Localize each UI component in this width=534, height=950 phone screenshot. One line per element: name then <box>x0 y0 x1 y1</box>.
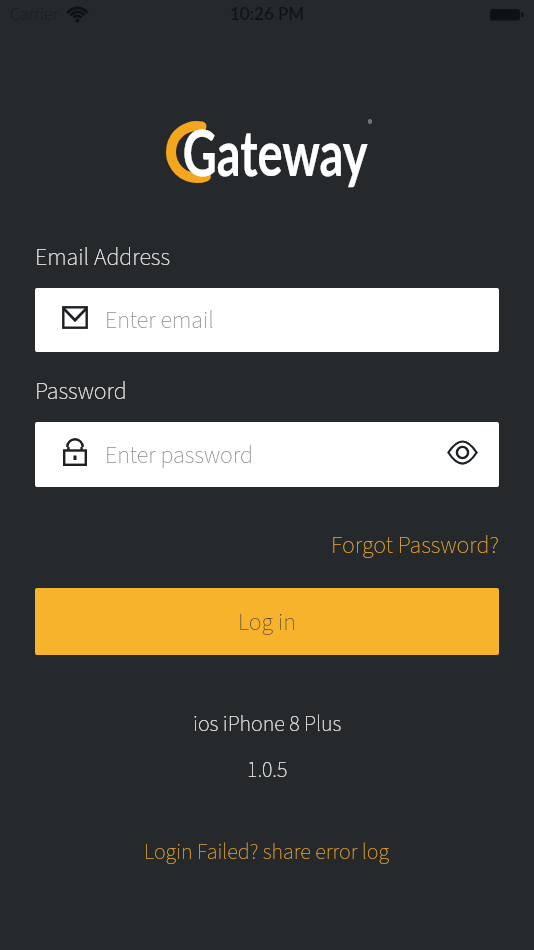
staticText: Email Address <box>35 240 171 274</box>
staticText: 1.0.5 <box>247 754 288 785</box>
button[interactable]: Login Failed? share error log <box>144 836 390 867</box>
staticText: ios iPhone 8 Plus <box>193 708 342 739</box>
button[interactable]: Forgot Password? <box>331 528 499 562</box>
staticText: Password <box>35 374 127 408</box>
staticText: ® <box>368 117 372 131</box>
staticText: Gateway <box>183 114 368 190</box>
button[interactable]: Enter password <box>35 422 499 487</box>
staticText: Log in <box>238 605 296 639</box>
button[interactable]: Log in <box>35 588 499 655</box>
button[interactable] <box>447 442 478 463</box>
staticText: Enter email <box>105 303 214 337</box>
staticText: Enter password <box>105 438 253 472</box>
button[interactable]: Enter email <box>35 288 499 352</box>
staticText: 10:26 PM <box>230 3 305 23</box>
